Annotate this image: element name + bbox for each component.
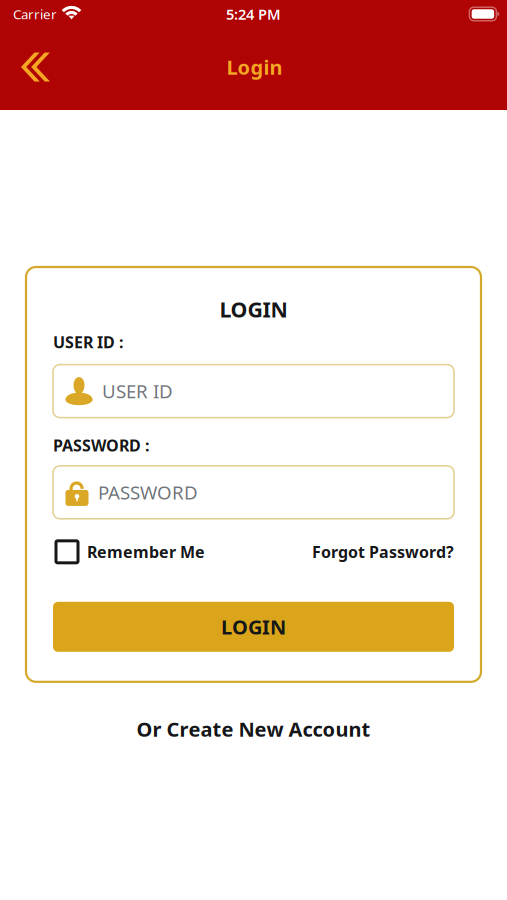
button[interactable]: LOGIN <box>53 602 454 652</box>
button[interactable]: Forgot Password? <box>312 537 454 566</box>
staticText: USER ID : <box>53 331 123 352</box>
staticText: Login <box>226 54 282 80</box>
staticText: Forgot Password? <box>312 541 454 562</box>
staticText: Carrier <box>13 5 57 23</box>
staticText: Remember Me <box>87 541 205 562</box>
staticText: Or Create New Account <box>136 716 370 742</box>
button[interactable]: Remember Me <box>53 537 205 567</box>
staticText: LOGIN <box>219 295 287 323</box>
staticText: LOGIN <box>221 613 286 640</box>
staticText: USER ID <box>102 379 173 403</box>
button[interactable]: Back <box>0 42 62 92</box>
staticText: 5:24 PM <box>226 4 281 24</box>
staticText: PASSWORD : <box>53 435 149 456</box>
button[interactable]: Or Create New Account <box>124 709 382 749</box>
staticText: PASSWORD <box>98 480 198 505</box>
